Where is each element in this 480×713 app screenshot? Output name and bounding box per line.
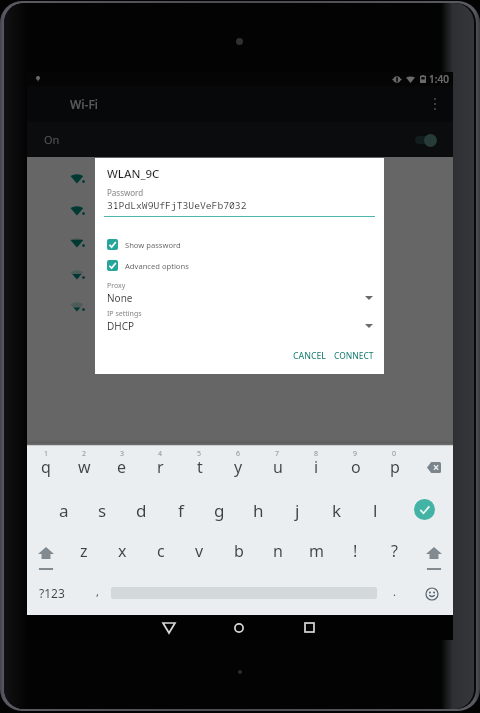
button[interactable]: 4 [141, 446, 180, 489]
button[interactable]: 6 [219, 446, 258, 489]
staticText: 6 [236, 449, 241, 459]
button[interactable]: ? [375, 531, 414, 573]
staticText: Password [107, 187, 144, 198]
staticText: 1 [44, 449, 49, 459]
staticText: , [96, 584, 99, 599]
button[interactable] [27, 290, 453, 322]
button[interactable]: Back [149, 615, 189, 640]
button[interactable]: 9 [336, 446, 375, 489]
staticText: d [136, 499, 147, 522]
staticText: m [309, 540, 324, 562]
staticText: j [295, 499, 300, 522]
button[interactable]: Advanced options [95, 260, 384, 271]
button[interactable] [27, 258, 453, 290]
staticText: k [332, 499, 342, 522]
staticText: None [107, 291, 133, 305]
button[interactable]: l [356, 489, 395, 531]
button[interactable]: More options [425, 94, 445, 114]
staticText: 2 [82, 449, 87, 459]
button[interactable]: n [258, 531, 297, 573]
staticText: On [44, 132, 60, 147]
staticText: s [98, 499, 107, 522]
button[interactable]: k [317, 489, 356, 531]
staticText: ? [391, 540, 398, 562]
staticText: r [157, 456, 164, 478]
button[interactable]: Home [219, 615, 259, 640]
staticText: 5 [197, 449, 202, 459]
button[interactable]: Show password [95, 239, 384, 250]
button[interactable]: Space [111, 573, 377, 615]
button[interactable]: c [141, 531, 180, 573]
button[interactable] [27, 194, 453, 226]
staticText: 8 [314, 449, 319, 459]
button[interactable]: ! [336, 531, 375, 573]
button[interactable]: DHCP [95, 319, 384, 333]
button[interactable]: 8 [297, 446, 336, 489]
staticText: 31PdLxW9UfFjT3UeVeFb7032 [107, 199, 247, 212]
staticText: Proxy [107, 281, 126, 291]
button[interactable]: x [103, 531, 141, 573]
staticText: ?123 [39, 585, 65, 601]
staticText: g [214, 499, 225, 522]
button[interactable]: b [219, 531, 258, 573]
button[interactable]: Enter [395, 489, 453, 531]
staticText: e [117, 456, 127, 478]
staticText: l [373, 499, 378, 522]
button[interactable]: s [83, 489, 122, 531]
staticText: q [41, 456, 51, 478]
button[interactable]: 0 [375, 446, 414, 489]
button[interactable]: f [161, 489, 200, 531]
staticText: Wi-Fi [70, 96, 98, 112]
button[interactable]: Shift [27, 531, 65, 573]
staticText: 9 [353, 449, 358, 459]
button[interactable]: j [278, 489, 317, 531]
button[interactable]: 5 [180, 446, 219, 489]
button[interactable]: 7 [258, 446, 297, 489]
staticText: p [390, 456, 400, 478]
button[interactable]: h [239, 489, 278, 531]
staticText: 7 [275, 449, 280, 459]
staticText: n [273, 540, 283, 562]
button[interactable]: Recent apps [289, 615, 329, 640]
button[interactable]: , [84, 573, 111, 615]
button[interactable]: CONNECT [326, 344, 382, 367]
button[interactable] [27, 162, 453, 194]
button[interactable]: g [200, 489, 239, 531]
button[interactable]: Backspace [414, 446, 453, 489]
button[interactable]: 3 [103, 446, 141, 489]
button[interactable]: 1 [27, 446, 65, 489]
staticText: 4 [158, 449, 163, 459]
button[interactable]: m [297, 531, 336, 573]
button[interactable]: v [180, 531, 219, 573]
button[interactable]: d [122, 489, 161, 531]
staticText: z [80, 540, 88, 562]
staticText: 0 [392, 449, 397, 459]
staticText: WLAN_9C [107, 166, 160, 182]
staticText: f [178, 499, 184, 522]
button[interactable]: a [45, 489, 83, 531]
staticText: . [393, 584, 396, 599]
staticText: ! [353, 540, 358, 562]
button[interactable]: Emoji [411, 573, 453, 615]
button[interactable] [27, 226, 453, 258]
button[interactable]: Shift [414, 531, 453, 573]
staticText: DHCP [107, 319, 135, 333]
staticText: y [234, 456, 243, 478]
button[interactable]: CANCEL [285, 344, 334, 368]
button[interactable]: ?123 [27, 573, 84, 615]
button[interactable]: Wi-Fi toggle [413, 132, 437, 148]
button[interactable]: . [377, 573, 411, 615]
staticText: 3 [120, 449, 125, 459]
button[interactable]: 2 [65, 446, 103, 489]
staticText: a [59, 499, 69, 522]
button[interactable]: z [65, 531, 103, 573]
staticText: Advanced options [125, 261, 189, 271]
staticText: CONNECT [334, 350, 374, 361]
staticText: CANCEL [293, 350, 326, 362]
staticText: IP settings [107, 309, 142, 319]
staticText: x [118, 540, 127, 562]
staticText: c [157, 540, 165, 562]
staticText: u [273, 456, 283, 478]
staticText: Show password [125, 240, 181, 250]
button[interactable]: None [95, 291, 384, 305]
